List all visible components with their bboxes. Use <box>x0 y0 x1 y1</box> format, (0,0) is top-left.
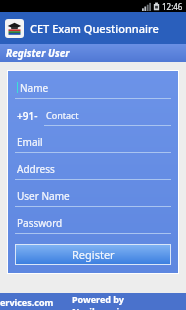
button[interactable]: Password <box>15 212 171 239</box>
staticText: Register User <box>6 46 70 60</box>
staticText: Powered by Nasikservices.com <box>72 293 186 310</box>
staticText: User Name <box>17 189 70 203</box>
staticText: Email <box>17 135 43 149</box>
staticText: Password <box>17 216 63 230</box>
button[interactable]: Name <box>15 77 171 104</box>
staticText: Address <box>17 162 55 176</box>
staticText: +91- <box>17 109 38 123</box>
staticText: Name <box>20 81 49 95</box>
staticText: 12:46 <box>162 1 183 12</box>
staticText: CET Exam Questionnaire <box>30 21 159 36</box>
button[interactable]: Email <box>15 131 171 158</box>
button[interactable]: User Name <box>15 185 171 212</box>
staticText: Contact <box>46 109 79 121</box>
button[interactable]: +91- <box>15 104 171 126</box>
staticText: Register <box>72 247 115 262</box>
button[interactable]: Address <box>15 158 171 185</box>
button[interactable]: Register <box>16 245 170 264</box>
staticText: ervices.com <box>0 296 54 308</box>
